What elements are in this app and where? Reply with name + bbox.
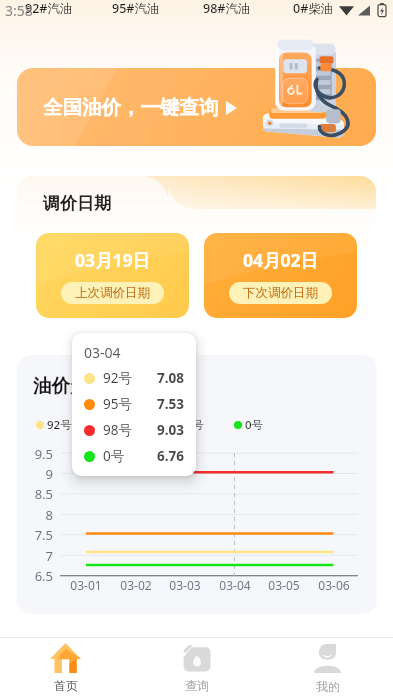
staticText: 04月02日 (243, 248, 319, 272)
staticText: 0号 (103, 447, 125, 465)
staticText: 油价走势图(元/升) (33, 372, 183, 397)
staticText: 03-01 (62, 577, 110, 593)
button[interactable]: 查询 (131, 638, 262, 700)
staticText: 98#汽油 (203, 0, 251, 15)
button[interactable]: 首页 (0, 638, 131, 700)
staticText: 3:58 (5, 1, 33, 20)
staticText: 全国油价，一键查询 (43, 95, 219, 120)
staticText: 95号 (103, 395, 132, 413)
staticText: 8.5 (17, 485, 53, 503)
staticText: 03-04 (211, 577, 259, 593)
staticText: 上次调价日期 (75, 285, 150, 301)
staticText: 03-04 (84, 343, 121, 362)
button[interactable]: 04月02日 (204, 233, 357, 318)
button[interactable]: 0#柴油 (293, 0, 334, 15)
staticText: 03-06 (310, 577, 358, 593)
staticText: 92号 (103, 369, 132, 387)
staticText: 92#汽油 (25, 0, 73, 15)
staticText: 95号 (113, 417, 138, 433)
staticText: 95#汽油 (112, 0, 160, 15)
button[interactable]: 我的 (262, 638, 393, 700)
staticText: 03-03 (161, 577, 209, 593)
staticText: 0#柴油 (293, 0, 334, 15)
staticText: 9.03 (157, 421, 184, 439)
staticText: 下次调价日期 (243, 285, 318, 301)
staticText: 8 (17, 506, 53, 524)
staticText: 查询 (185, 678, 209, 693)
staticText: 7 (17, 547, 53, 565)
staticText: 03-05 (260, 577, 308, 593)
staticText: 92号 (47, 417, 72, 433)
staticText: 98号 (103, 421, 132, 439)
staticText: 我的 (316, 679, 340, 694)
button[interactable] (17, 68, 376, 146)
staticText: 98号 (179, 417, 204, 433)
staticText: 7.53 (157, 395, 184, 413)
staticText: 9.5 (17, 445, 53, 463)
staticText: 6.5 (17, 567, 53, 585)
staticText: 首页 (54, 678, 78, 693)
staticText: 03-02 (112, 577, 160, 593)
button[interactable]: 03月19日 (36, 233, 189, 318)
button[interactable]: 95#汽油 (112, 0, 160, 15)
staticText: 7.5 (17, 526, 53, 544)
staticText: 03月19日 (75, 248, 151, 272)
staticText: 6.76 (157, 447, 184, 465)
button[interactable]: 98#汽油 (203, 0, 251, 15)
staticText: 9 (17, 465, 53, 483)
button[interactable]: 92#汽油 (25, 0, 73, 15)
staticText: 调价日期 (43, 193, 111, 214)
staticText: 7.08 (157, 369, 184, 387)
staticText: 0号 (245, 417, 264, 433)
